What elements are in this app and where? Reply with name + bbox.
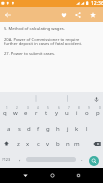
- button[interactable]: a: [4, 121, 14, 136]
- staticText: j: [67, 125, 69, 133]
- staticText: 7: [68, 106, 70, 110]
- staticText: e: [24, 109, 28, 117]
- staticText: 9: [88, 106, 90, 110]
- button[interactable]: l: [82, 121, 92, 136]
- button[interactable]: Backspace: [90, 136, 103, 151]
- button[interactable]: 9: [82, 105, 92, 120]
- button[interactable]: Favorite: [57, 7, 70, 22]
- button[interactable]: h: [53, 121, 63, 136]
- button[interactable]: 7: [62, 105, 72, 120]
- button[interactable]: n: [63, 136, 73, 151]
- button[interactable]: Share: [71, 7, 84, 22]
- staticText: 0: [99, 106, 101, 110]
- button[interactable]: d: [24, 121, 34, 136]
- staticText: s: [18, 125, 21, 133]
- staticText: 5: [47, 106, 49, 110]
- button[interactable]: Bookmark: [86, 7, 99, 22]
- button[interactable]: f: [33, 121, 43, 136]
- staticText: i: [76, 109, 78, 117]
- staticText: .: [81, 155, 83, 163]
- button[interactable]: m: [72, 136, 82, 151]
- staticText: f: [37, 125, 40, 133]
- staticText: 8: [78, 106, 80, 110]
- staticText: h: [56, 125, 60, 133]
- button[interactable]: c: [33, 136, 43, 151]
- button[interactable]: Back: [1, 7, 15, 22]
- button[interactable]: Space: [26, 157, 76, 162]
- staticText: z: [17, 140, 20, 148]
- button[interactable]: 2: [10, 105, 20, 120]
- staticText: b: [56, 140, 60, 148]
- staticText: a: [7, 125, 11, 133]
- button[interactable]: 1: [0, 105, 10, 120]
- button[interactable]: b: [53, 136, 63, 151]
- staticText: o: [85, 109, 89, 117]
- staticText: d: [27, 125, 31, 133]
- button[interactable]: j: [63, 121, 73, 136]
- staticText: v: [46, 140, 50, 148]
- staticText: q: [3, 109, 7, 117]
- staticText: ?123: [2, 157, 11, 162]
- button[interactable]: 5: [41, 105, 51, 120]
- staticText: k: [75, 125, 79, 133]
- staticText: g: [46, 125, 50, 133]
- staticText: n: [66, 140, 70, 148]
- staticText: 12:36: [91, 0, 103, 7]
- button[interactable]: Search: [89, 156, 99, 166]
- staticText: 27. Power to submit cases.: [4, 51, 56, 57]
- staticText: w: [13, 109, 18, 117]
- button[interactable]: Home: [45, 168, 60, 183]
- button[interactable]: x: [23, 136, 33, 151]
- button[interactable]: 6: [52, 105, 62, 120]
- staticText: 2: [16, 106, 18, 110]
- staticText: p: [96, 109, 100, 117]
- staticText: 20A. Power of Commissioner to require fu…: [4, 37, 88, 47]
- staticText: l: [86, 125, 88, 133]
- button[interactable]: k: [72, 121, 82, 136]
- button[interactable]: ,: [14, 152, 26, 167]
- button[interactable]: .: [76, 152, 87, 167]
- staticText: ,: [19, 155, 21, 163]
- staticText: 4: [37, 106, 39, 110]
- button[interactable]: ?123: [0, 152, 13, 167]
- staticText: c: [37, 140, 40, 148]
- button[interactable]: g: [43, 121, 53, 136]
- staticText: 6: [58, 106, 60, 110]
- staticText: x: [26, 140, 30, 148]
- button[interactable]: 4: [31, 105, 41, 120]
- button[interactable]: s: [14, 121, 24, 136]
- button[interactable]: 3: [21, 105, 31, 120]
- staticText: r: [35, 109, 38, 117]
- staticText: m: [74, 140, 80, 148]
- button[interactable]: 0: [93, 105, 103, 120]
- button[interactable]: Recents: [71, 168, 86, 183]
- staticText: 3: [27, 106, 29, 110]
- staticText: 5. Method of calculating wages.: [4, 26, 65, 32]
- button[interactable]: Back: [18, 168, 33, 183]
- staticText: y: [55, 109, 59, 117]
- button[interactable]: 8: [72, 105, 82, 120]
- staticText: 1: [6, 106, 8, 110]
- button[interactable]: Voice input: [89, 92, 103, 105]
- button[interactable]: v: [43, 136, 53, 151]
- button[interactable]: z: [13, 136, 23, 151]
- button[interactable]: Shift: [0, 136, 13, 151]
- staticText: u: [65, 109, 69, 117]
- staticText: t: [45, 109, 48, 117]
